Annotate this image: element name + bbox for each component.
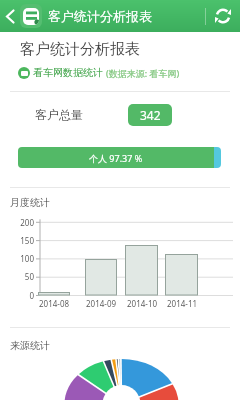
button[interactable]: 342 [128, 104, 172, 126]
button[interactable] [0, 0, 19, 32]
button[interactable]: 看车网数据统计 [18, 66, 180, 79]
staticText: 200 [8, 217, 34, 228]
button[interactable] [206, 0, 240, 32]
staticText: 0 [8, 290, 34, 301]
staticText: 客户统计分析报表 [48, 8, 152, 24]
staticText: (数据来源: 看车网) [106, 67, 180, 79]
staticText: 来源统计 [10, 339, 50, 352]
staticText: 100 [8, 253, 34, 264]
staticText: 2014-10 [127, 298, 158, 309]
staticText: 150 [8, 235, 34, 246]
staticText: 2014-09 [86, 298, 117, 309]
staticText: 客户总量 [35, 107, 83, 122]
staticText: 342 [140, 107, 161, 123]
button[interactable]: 个人 97.37 % [18, 147, 221, 168]
staticText: 2014-08 [39, 298, 70, 309]
staticText: 个人 97.37 % [89, 152, 143, 164]
staticText: 50 [8, 271, 34, 282]
staticText: 客户统计分析报表 [20, 40, 140, 59]
staticText: 看车网数据统计 [33, 66, 103, 79]
staticText: 2014-11 [167, 298, 198, 309]
staticText: 月度统计 [10, 196, 50, 209]
